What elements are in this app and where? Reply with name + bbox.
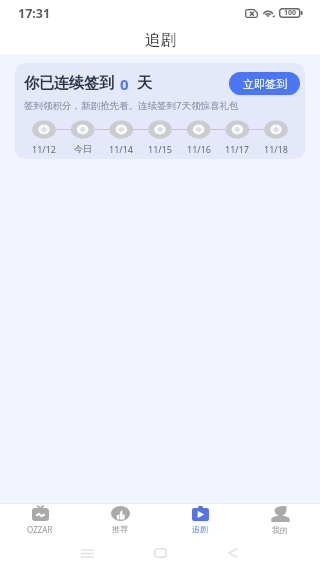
button[interactable]: 立即签到 [229,72,300,95]
staticText: 17:31 [18,5,51,22]
staticText: 11/18 [264,143,288,155]
staticText: 签到领积分，新剧抢先看。连续签到7天领惊喜礼包 [24,99,239,112]
staticText: 立即签到 [243,77,287,91]
staticText: 追剧 [145,30,176,50]
staticText: OZZAR [27,524,53,535]
staticText: 11/12 [32,143,56,155]
button[interactable]: 推荐 [80,506,160,534]
staticText: 100 [284,8,297,18]
staticText: 追剧 [192,524,208,534]
button[interactable]: 我的 [240,506,320,535]
staticText: 推荐 [112,524,128,534]
button[interactable]: Home [145,538,175,568]
staticText: 11/17 [225,143,249,155]
staticText: 今日 [74,143,92,154]
button[interactable]: 追剧 [160,506,240,534]
staticText: 11/16 [187,143,211,155]
button[interactable]: OZZAR [0,505,80,535]
staticText: 我的 [272,525,288,535]
staticText: 天 [137,74,152,93]
staticText: 11/15 [148,143,172,155]
staticText: 0 [120,74,129,94]
button[interactable]: Back [218,538,248,568]
button[interactable]: Recents [72,538,102,568]
staticText: 你已连续签到 [24,74,114,93]
staticText: 11/14 [109,143,133,155]
